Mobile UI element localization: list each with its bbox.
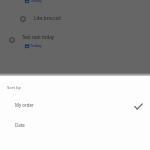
button[interactable]: Like broccoli: [0, 11, 150, 25]
other: Selected: [134, 102, 143, 111]
staticText: My order: [15, 102, 34, 108]
staticText: Today: [30, 0, 42, 4]
staticText: Date: [15, 122, 25, 128]
staticText: Test task today: [22, 34, 55, 40]
button[interactable]: My order: [0, 95, 150, 115]
staticText: Sort by: [7, 85, 21, 91]
staticText: Like broccoli: [34, 15, 61, 21]
button[interactable]: Date: [0, 115, 150, 135]
button[interactable]: Test task today: [0, 31, 150, 52]
staticText: Today: [30, 43, 42, 49]
